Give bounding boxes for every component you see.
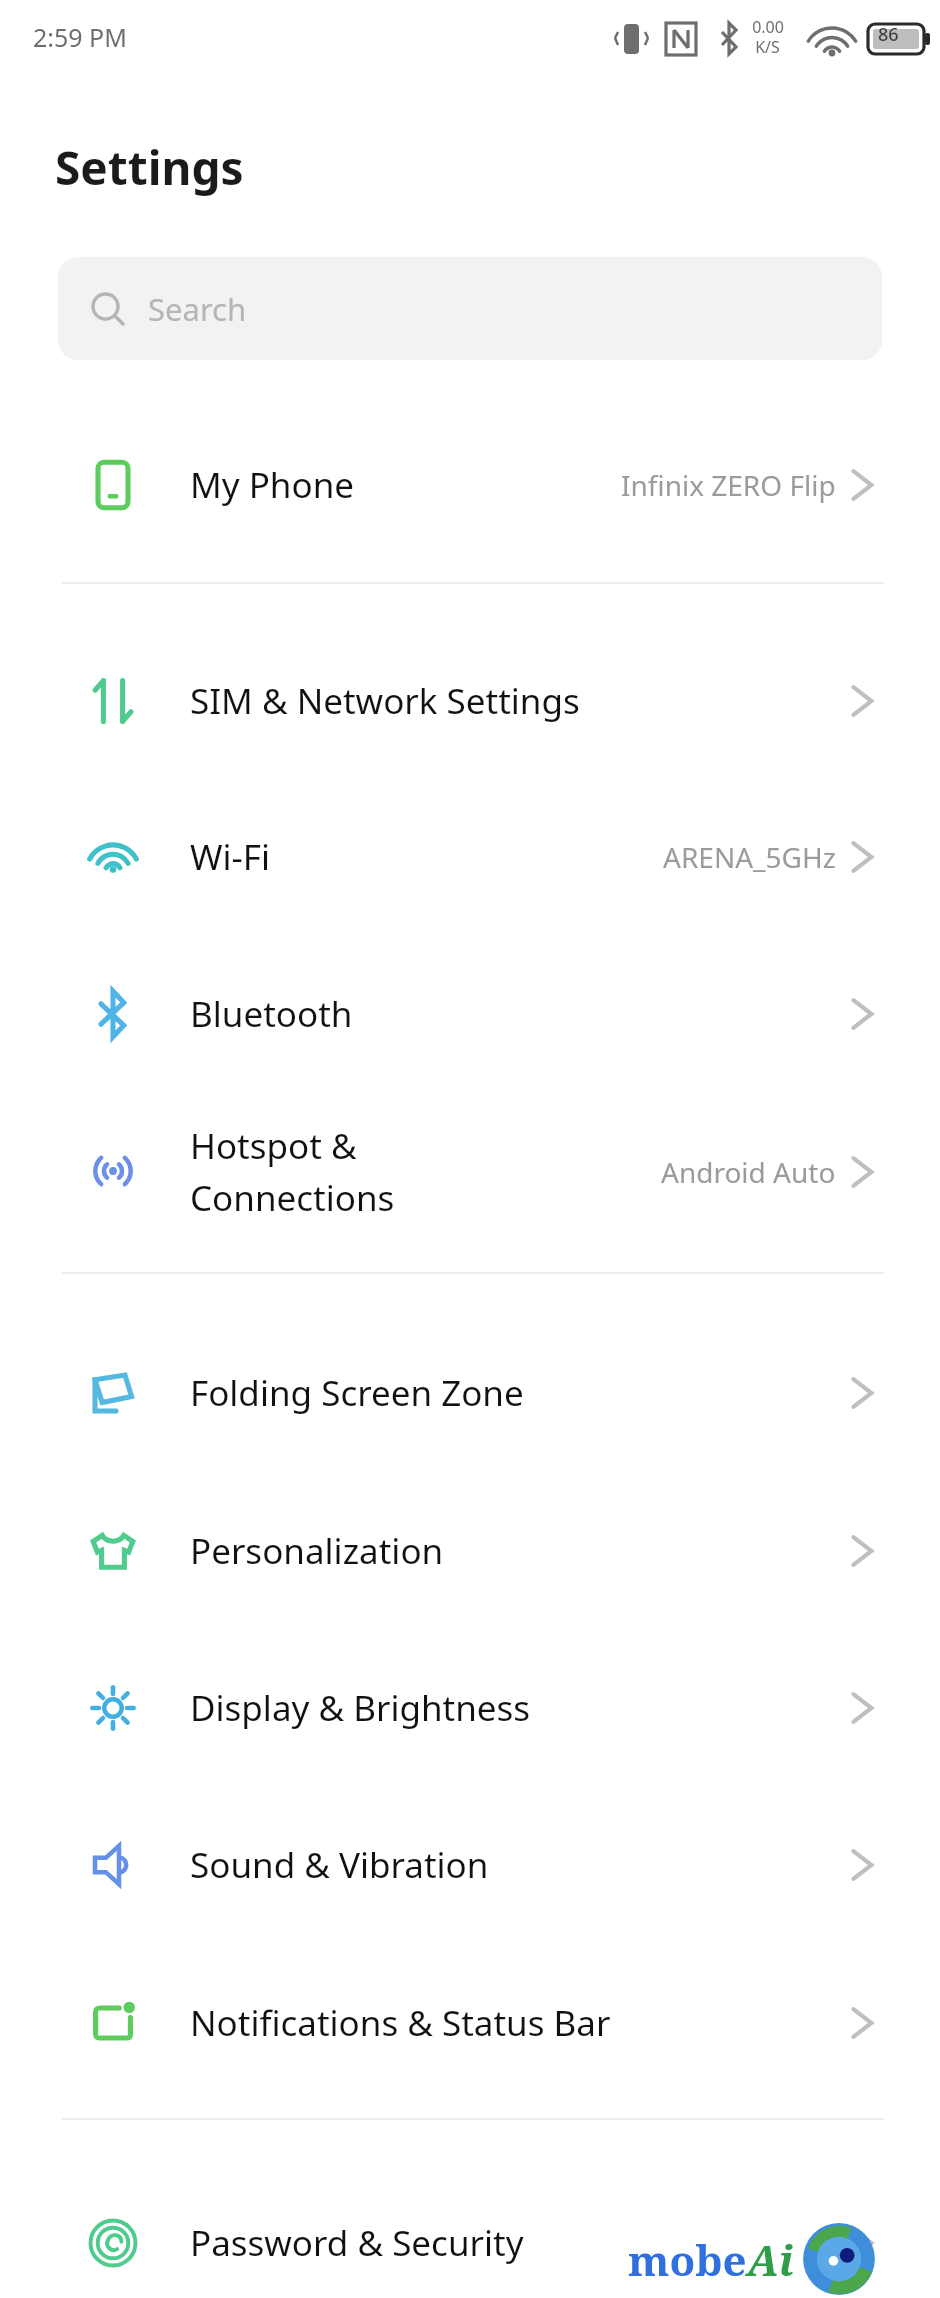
staticText: 86 [878,22,899,47]
button[interactable]: Folding Screen Zone [0,1314,940,1471]
button[interactable]: SIM and Network [0,622,940,779]
staticText: Wi-Fi [190,833,271,881]
staticText: 0.00 [752,16,784,38]
other: Display and Brightness [83,1629,143,1786]
button[interactable]: Search [58,257,882,360]
button[interactable]: Bluetooth [0,935,940,1092]
button[interactable]: Sound and Vibration [0,1786,940,1943]
staticText: Ai [747,2231,794,2288]
staticText: Notifications & Status Bar [190,1999,611,2047]
staticText: Hotspot & [190,1122,357,1170]
other: My Phone [83,406,143,563]
other: SIM and Network [83,622,143,779]
button[interactable]: Password and Security [0,2164,940,2298]
staticText: SIM & Network Settings [190,677,580,725]
staticText: Display & Brightness [190,1684,531,1732]
other: Wi-Fi [83,778,143,935]
staticText: 2:59 PM [33,20,127,54]
staticText: Personalization [190,1527,444,1575]
staticText: My Phone [190,461,355,509]
other: Folding Screen Zone [83,1314,143,1471]
staticText: ARENA_5GHz [663,838,836,876]
staticText: mobe [628,2231,747,2288]
button[interactable]: Personalization [0,1472,940,1629]
button[interactable]: My Phone [0,406,940,563]
staticText: Search [148,288,247,330]
other: Personalization [83,1472,143,1629]
other: Notifications and Status Bar [83,1944,143,2101]
staticText: Password & Security [190,2219,524,2267]
button[interactable]: Display and Brightness [0,1629,940,1786]
staticText: Bluetooth [190,990,353,1038]
staticText: Settings [55,136,244,199]
staticText: Sound & Vibration [190,1841,489,1889]
staticText: Connections [190,1174,395,1222]
staticText: Folding Screen Zone [190,1369,524,1417]
button[interactable]: Notifications and Status Bar [0,1944,940,2101]
button[interactable]: Wi-Fi [0,778,940,935]
other: Hotspot and Connections [83,1092,143,1249]
staticText: Infinix ZERO Flip [621,466,836,504]
button[interactable]: Hotspot and Connections [0,1092,940,1252]
other: Password and Security [83,2164,143,2298]
staticText: Android Auto [661,1153,836,1191]
other: Bluetooth [83,935,143,1092]
other: Sound and Vibration [83,1786,143,1943]
staticText: K/S [755,36,780,58]
